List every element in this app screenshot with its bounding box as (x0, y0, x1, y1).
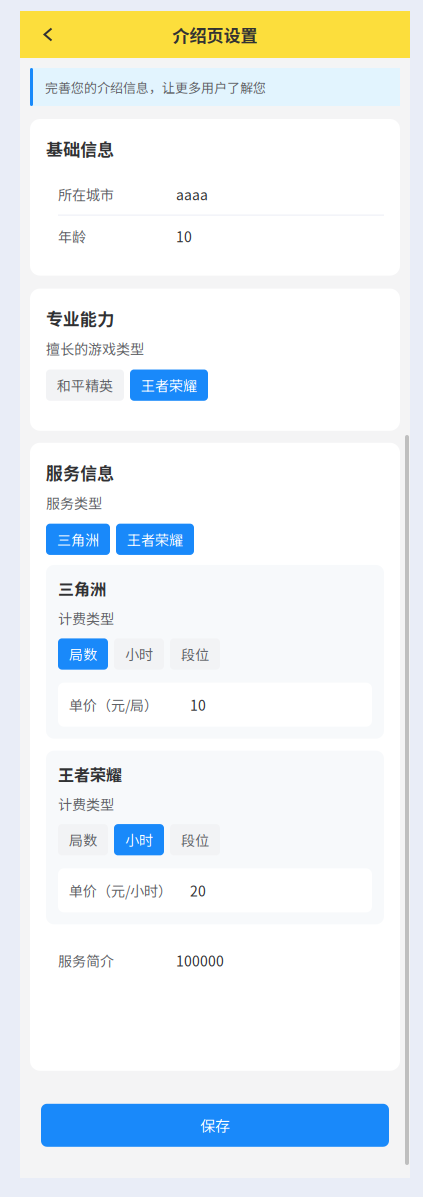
staticText: 服务简介 (58, 950, 114, 971)
staticText: aaaa (176, 184, 208, 204)
staticText: 20 (190, 880, 206, 900)
button[interactable]: 局数 (58, 638, 108, 670)
staticText: 完善您的介绍信息，让更多用户了解您 (45, 78, 266, 96)
staticText: 三角洲 (58, 577, 106, 600)
button[interactable]: Back (28, 11, 68, 58)
staticText: 单价（元/小时） (69, 880, 172, 900)
staticText: 服务类型 (46, 492, 102, 513)
staticText: 10 (176, 226, 192, 246)
staticText: 年龄 (58, 226, 86, 246)
button[interactable]: 和平精英 (46, 369, 124, 401)
button[interactable]: 小时 (114, 824, 164, 855)
staticText: 所在城市 (58, 184, 114, 204)
staticText: 介绍页设置 (172, 22, 257, 47)
button[interactable]: 王者荣耀 (130, 369, 208, 401)
staticText: 王者荣耀 (58, 763, 122, 786)
staticText: 100000 (176, 950, 224, 971)
staticText: 服务信息 (46, 460, 114, 484)
staticText: 10 (190, 694, 206, 715)
staticText: 和平精英 (57, 375, 113, 395)
staticText: 王者荣耀 (141, 375, 197, 395)
staticText: 保存 (200, 1114, 230, 1136)
button[interactable]: 局数 (58, 824, 108, 855)
staticText: 段位 (181, 644, 209, 664)
staticText: 基础信息 (46, 136, 114, 161)
button[interactable]: 段位 (170, 638, 220, 670)
button[interactable]: 王者荣耀 (116, 524, 194, 555)
staticText: 计费类型 (58, 608, 114, 628)
staticText: 局数 (69, 830, 97, 850)
staticText: 擅长的游戏类型 (46, 338, 144, 358)
staticText: 局数 (69, 644, 97, 664)
staticText: 王者荣耀 (127, 529, 183, 549)
button[interactable]: 段位 (170, 824, 220, 855)
staticText: 小时 (125, 830, 153, 850)
staticText: 计费类型 (58, 794, 114, 814)
button[interactable]: 小时 (114, 638, 164, 670)
staticText: 三角洲 (57, 529, 99, 549)
staticText: 小时 (125, 644, 153, 664)
staticText: 专业能力 (46, 306, 114, 330)
button[interactable]: 三角洲 (46, 524, 110, 555)
button[interactable]: 保存 (41, 1104, 389, 1147)
staticText: 段位 (181, 830, 209, 850)
staticText: 单价（元/局） (69, 694, 158, 715)
